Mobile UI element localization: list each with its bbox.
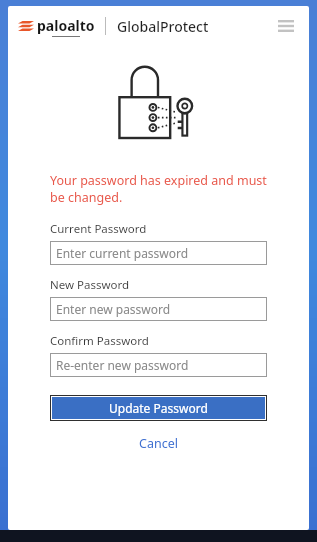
staticText: Update Password xyxy=(109,400,208,416)
button[interactable]: Enter new password xyxy=(50,297,267,321)
button[interactable]: Cancel xyxy=(131,433,186,454)
staticText: Confirm Password xyxy=(50,333,149,349)
button[interactable]: Menu xyxy=(273,13,299,39)
staticText: Current Password xyxy=(50,221,147,237)
staticText: Enter current password xyxy=(56,245,189,261)
staticText: Cancel xyxy=(139,435,178,452)
staticText: New Password xyxy=(50,277,130,293)
staticText: GlobalProtect xyxy=(117,17,209,36)
staticText: Your password has expired and must be ch… xyxy=(50,172,267,205)
button[interactable]: Re-enter new password xyxy=(50,353,267,377)
button[interactable]: Enter current password xyxy=(50,241,267,265)
button[interactable]: Update Password xyxy=(52,397,265,419)
staticText: Re-enter new password xyxy=(56,357,189,373)
staticText: paloalto xyxy=(37,16,95,35)
staticText: Enter new password xyxy=(56,301,171,317)
